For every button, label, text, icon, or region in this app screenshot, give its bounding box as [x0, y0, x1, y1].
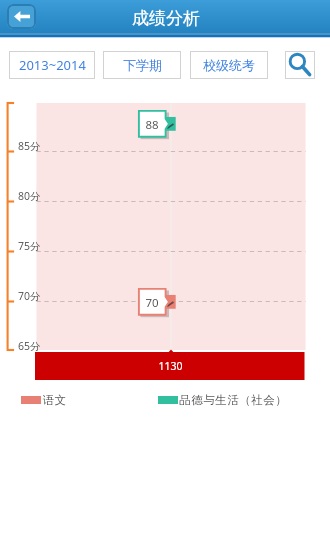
staticText: 70 [138, 295, 166, 311]
staticText: 2013~2014 [19, 56, 86, 74]
staticText: 70分 [18, 289, 48, 303]
staticText: 下学期 [123, 57, 162, 73]
staticText: 校级统考 [203, 57, 255, 73]
staticText: 品德与生活（社会） [179, 393, 287, 407]
button[interactable]: Search [285, 51, 315, 79]
staticText: 成绩分析 [128, 8, 204, 30]
button[interactable]: Back [7, 4, 36, 29]
button[interactable]: 2013~2014 [9, 51, 95, 79]
button[interactable]: 校级统考 [190, 51, 268, 79]
staticText: 88 [138, 117, 166, 133]
staticText: 1130 [141, 359, 200, 375]
staticText: 85分 [18, 139, 48, 153]
staticText: 语文 [43, 393, 66, 407]
staticText: 65分 [18, 339, 48, 353]
staticText: 75分 [18, 239, 48, 253]
staticText: 80分 [18, 189, 48, 203]
button[interactable]: 下学期 [103, 51, 181, 79]
